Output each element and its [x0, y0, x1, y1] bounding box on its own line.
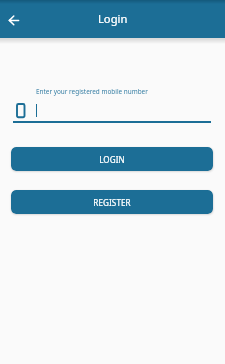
- staticText: REGISTER: [93, 197, 131, 208]
- staticText: LOGIN: [99, 154, 125, 165]
- button[interactable]: REGISTER: [11, 190, 213, 214]
- button[interactable]: LOGIN: [11, 147, 213, 171]
- staticText: Enter your registered mobile number: [36, 87, 148, 96]
- button[interactable]: Back: [2, 9, 26, 33]
- staticText: Login: [98, 11, 128, 26]
